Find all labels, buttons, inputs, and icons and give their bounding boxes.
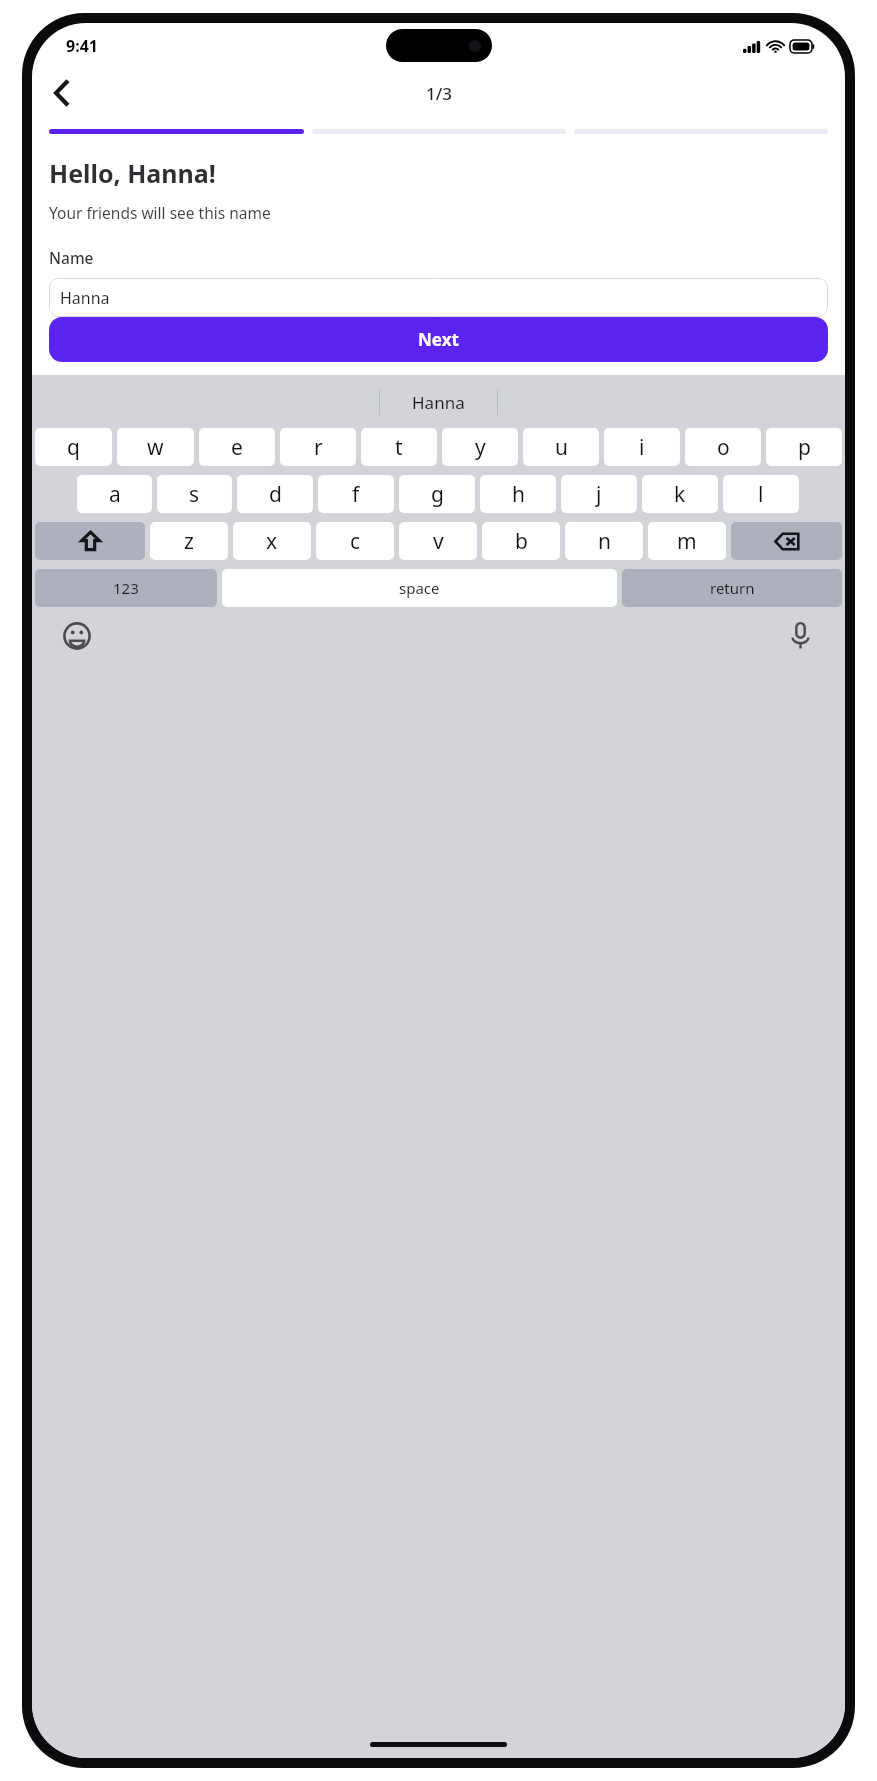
button[interactable]: Dictation	[783, 619, 817, 653]
button[interactable]: b	[482, 522, 560, 560]
staticText: k	[674, 480, 686, 509]
staticText: o	[717, 433, 730, 462]
button[interactable]: e	[199, 428, 275, 466]
staticText: Hanna	[60, 287, 110, 309]
staticText: a	[109, 480, 121, 509]
button[interactable]: space	[222, 569, 617, 607]
staticText: x	[266, 527, 278, 556]
button[interactable]: v	[399, 522, 477, 560]
button[interactable]: Hanna	[49, 278, 828, 317]
button[interactable]: t	[361, 428, 437, 466]
button[interactable]: Delete	[731, 522, 842, 560]
staticText: space	[399, 578, 440, 598]
staticText: b	[515, 527, 528, 556]
button[interactable]: Next	[49, 317, 828, 362]
button[interactable]: c	[316, 522, 394, 560]
staticText: e	[231, 433, 243, 462]
button[interactable]: p	[766, 428, 842, 466]
staticText: r	[314, 433, 323, 462]
staticText: Next	[418, 328, 459, 351]
button[interactable]: f	[318, 475, 394, 513]
staticText: f	[352, 480, 360, 509]
staticText: Hanna	[412, 391, 465, 414]
staticText: Hello, Hanna!	[49, 156, 216, 190]
button[interactable]: a	[77, 475, 152, 513]
staticText: 1/3	[426, 82, 452, 105]
button[interactable]: z	[150, 522, 228, 560]
button[interactable]: m	[648, 522, 726, 560]
button[interactable]: h	[480, 475, 556, 513]
button[interactable]: q	[35, 428, 112, 466]
button[interactable]: o	[685, 428, 761, 466]
staticText: return	[710, 578, 755, 598]
button[interactable]: Emoji	[60, 619, 94, 653]
staticText: u	[555, 433, 568, 462]
staticText: g	[431, 480, 444, 509]
staticText: m	[677, 527, 697, 556]
staticText: c	[350, 527, 361, 556]
staticText: 9:41	[66, 35, 98, 57]
button[interactable]: u	[523, 428, 599, 466]
button[interactable]: l	[723, 475, 799, 513]
staticText: h	[512, 480, 525, 509]
staticText: y	[475, 433, 486, 462]
button[interactable]: Shift	[35, 522, 145, 560]
staticText: t	[395, 433, 403, 462]
staticText: 123	[113, 578, 139, 598]
staticText: w	[147, 433, 164, 462]
button[interactable]: g	[399, 475, 475, 513]
button[interactable]: Back	[40, 71, 84, 115]
staticText: n	[598, 527, 611, 556]
button[interactable]: 123	[35, 569, 217, 607]
staticText: i	[639, 433, 645, 462]
staticText: d	[269, 480, 282, 509]
button[interactable]: return	[622, 569, 842, 607]
staticText: q	[67, 433, 80, 462]
button[interactable]: Hanna	[380, 382, 497, 422]
button[interactable]: d	[237, 475, 313, 513]
staticText: Name	[49, 247, 94, 268]
button[interactable]: y	[442, 428, 518, 466]
staticText: p	[798, 433, 811, 462]
staticText: l	[758, 480, 764, 509]
button[interactable]: w	[117, 428, 194, 466]
staticText: Your friends will see this name	[49, 202, 271, 223]
button[interactable]: i	[604, 428, 680, 466]
staticText: v	[433, 527, 444, 556]
staticText: s	[189, 480, 200, 509]
button[interactable]: k	[642, 475, 718, 513]
button[interactable]: j	[561, 475, 637, 513]
button[interactable]: s	[157, 475, 232, 513]
button[interactable]: n	[565, 522, 643, 560]
staticText: j	[596, 480, 602, 509]
button[interactable]: x	[233, 522, 311, 560]
button[interactable]: r	[280, 428, 356, 466]
staticText: z	[184, 527, 194, 556]
